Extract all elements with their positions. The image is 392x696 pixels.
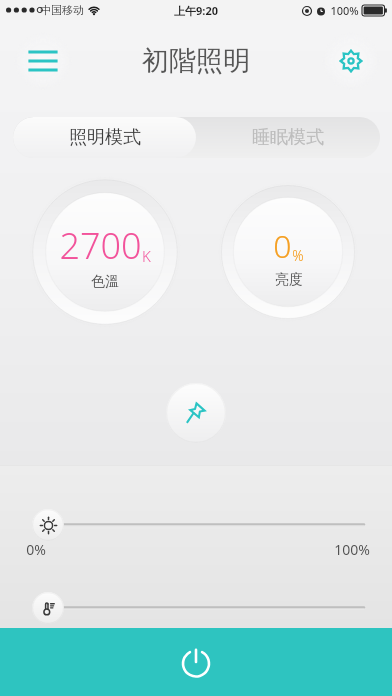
staticText: 色溫: [91, 273, 119, 291]
staticText: 中国移动: [40, 3, 84, 17]
staticText: 2700: [59, 221, 142, 270]
staticText: 100%: [334, 540, 370, 559]
staticText: 上午9:20: [174, 3, 218, 18]
button[interactable]: 照明模式: [13, 117, 196, 158]
staticText: %: [292, 246, 304, 265]
button[interactable]: Settings: [322, 32, 380, 90]
button[interactable]: Power: [0, 628, 392, 696]
staticText: 0: [273, 224, 292, 268]
button[interactable]: Pin: [166, 383, 226, 443]
staticText: 睡眠模式: [252, 126, 324, 149]
button[interactable]: Brightness slider: [0, 506, 392, 564]
staticText: 0%: [26, 540, 46, 559]
staticText: 4000K: [329, 623, 370, 642]
button[interactable]: Color temperature slider: [0, 589, 392, 647]
staticText: 亮度: [275, 271, 303, 289]
button[interactable]: 睡眠模式: [196, 117, 380, 158]
staticText: 初階照明: [142, 44, 250, 78]
button[interactable]: Brightness 0 percent: [218, 182, 358, 322]
staticText: 2700K: [26, 623, 67, 642]
staticText: 100%: [330, 3, 359, 18]
staticText: 照明模式: [69, 126, 141, 149]
button[interactable]: Color temperature 2700 K: [29, 176, 181, 328]
button[interactable]: Menu: [14, 32, 72, 90]
staticText: K: [142, 246, 151, 266]
